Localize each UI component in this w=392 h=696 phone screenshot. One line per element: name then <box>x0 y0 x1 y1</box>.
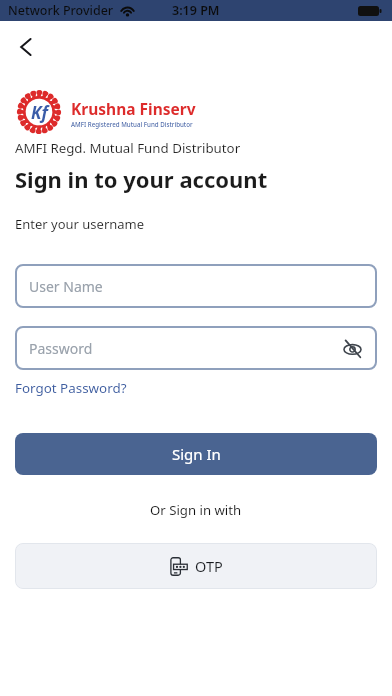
button[interactable] <box>10 31 42 63</box>
button[interactable]: Sign In <box>15 433 377 475</box>
staticText: Enter your username <box>15 215 145 233</box>
button[interactable]: Password <box>15 326 377 370</box>
button[interactable]: Forgot Password? <box>15 379 127 397</box>
staticText: Krushna Finserv <box>71 98 196 119</box>
staticText: AMFI Registered Mutual Fund Distributor <box>71 120 193 128</box>
button[interactable]: User Name <box>15 264 377 308</box>
button[interactable]: OTP <box>15 543 377 589</box>
staticText: Sign in to your account <box>15 164 268 194</box>
staticText: OTP <box>195 556 223 576</box>
staticText: Kf <box>31 101 48 124</box>
staticText: User Name <box>29 277 103 296</box>
staticText: Network Provider <box>8 2 114 19</box>
staticText: Password <box>29 339 93 358</box>
staticText: Or Sign in with <box>150 501 242 519</box>
staticText: Sign In <box>172 444 221 464</box>
staticText: 3:19 PM <box>172 2 220 19</box>
staticText: AMFI Regd. Mutual Fund Distributor <box>15 139 241 157</box>
